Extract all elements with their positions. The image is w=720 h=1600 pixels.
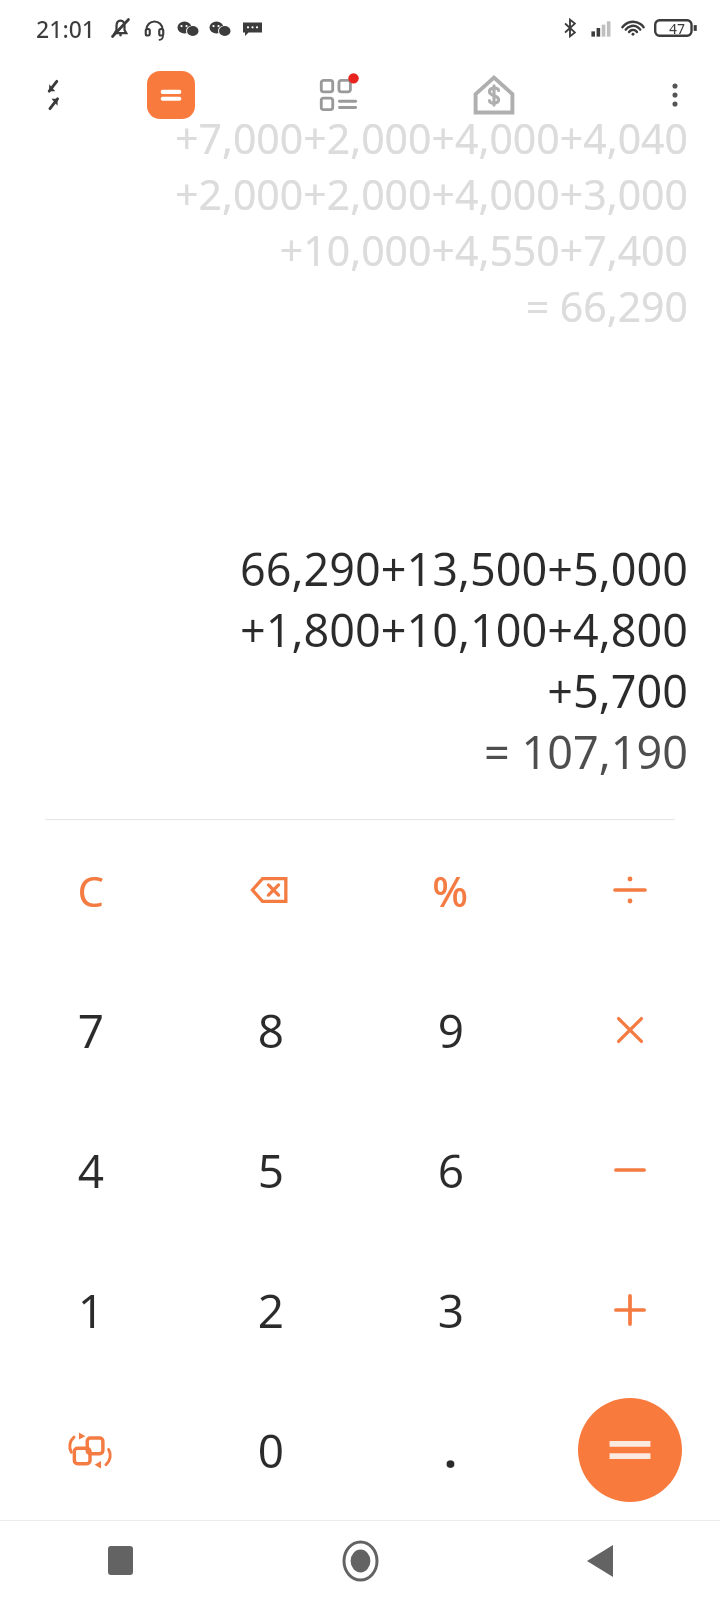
button[interactable]: Plus [540, 1240, 720, 1380]
button[interactable]: Calculator [140, 64, 202, 126]
button[interactable]: 4 [0, 1100, 180, 1240]
button[interactable]: Mortgage [458, 59, 530, 131]
staticText: 8 [257, 999, 284, 1062]
staticText: 5 [257, 1139, 284, 1202]
staticText: +1,800+10,100+4,800 [239, 599, 688, 660]
button[interactable]: Divide [540, 820, 720, 960]
button[interactable]: 0 [180, 1380, 360, 1520]
staticText: 9 [437, 999, 464, 1062]
staticText: +5,700 [547, 660, 688, 721]
button[interactable]: Modules [304, 59, 376, 131]
button[interactable]: Equals [578, 1398, 682, 1502]
staticText: % [432, 862, 468, 919]
staticText: 4 [77, 1139, 104, 1202]
button[interactable]: 2 [180, 1240, 360, 1380]
button[interactable]: Back [480, 1521, 720, 1600]
other: Minus [608, 1148, 652, 1192]
button[interactable]: % [360, 820, 540, 960]
button[interactable]: 9 [360, 960, 540, 1100]
button[interactable]: 3 [360, 1240, 540, 1380]
button[interactable]: More options [644, 64, 706, 126]
staticText: 3 [437, 1279, 464, 1342]
button[interactable]: C [0, 820, 180, 960]
staticText: 1 [77, 1279, 104, 1342]
staticText: 6 [437, 1139, 464, 1202]
other: Plus [608, 1288, 652, 1332]
staticText: 0 [257, 1419, 284, 1482]
button[interactable]: Recents [0, 1521, 240, 1600]
staticText: 66,290+13,500+5,000 [239, 538, 688, 599]
button[interactable]: Multiply [540, 960, 720, 1100]
other: Backspace [248, 868, 292, 912]
button[interactable]: . [360, 1380, 540, 1520]
button[interactable]: Backspace [180, 820, 360, 960]
other: Divide [608, 868, 652, 912]
staticText: . [444, 1419, 457, 1482]
button[interactable]: Unit converter [0, 1380, 180, 1520]
staticText: 2 [257, 1279, 284, 1342]
button[interactable]: 1 [0, 1240, 180, 1380]
button[interactable]: 8 [180, 960, 360, 1100]
button[interactable]: 5 [180, 1100, 360, 1240]
staticText: +2,000+2,000+4,000+3,000 [175, 166, 688, 222]
staticText: 7 [77, 999, 104, 1062]
button[interactable]: 6 [360, 1100, 540, 1240]
button[interactable]: 7 [0, 960, 180, 1100]
staticText: 21:01 [36, 13, 95, 44]
button[interactable]: Home [240, 1521, 480, 1600]
staticText: C [77, 862, 104, 919]
other: Unit converter [67, 1427, 113, 1473]
button[interactable]: Collapse [22, 64, 84, 126]
button[interactable]: Equals [540, 1380, 720, 1520]
staticText: 47 [668, 19, 685, 38]
other: Multiply [608, 1008, 652, 1052]
staticText: +7,000+2,000+4,000+4,040 [175, 110, 688, 166]
staticText: +10,000+4,550+7,400 [279, 222, 688, 278]
staticText: = 107,190 [484, 721, 688, 782]
button[interactable]: Minus [540, 1100, 720, 1240]
staticText: = 66,290 [525, 278, 688, 334]
